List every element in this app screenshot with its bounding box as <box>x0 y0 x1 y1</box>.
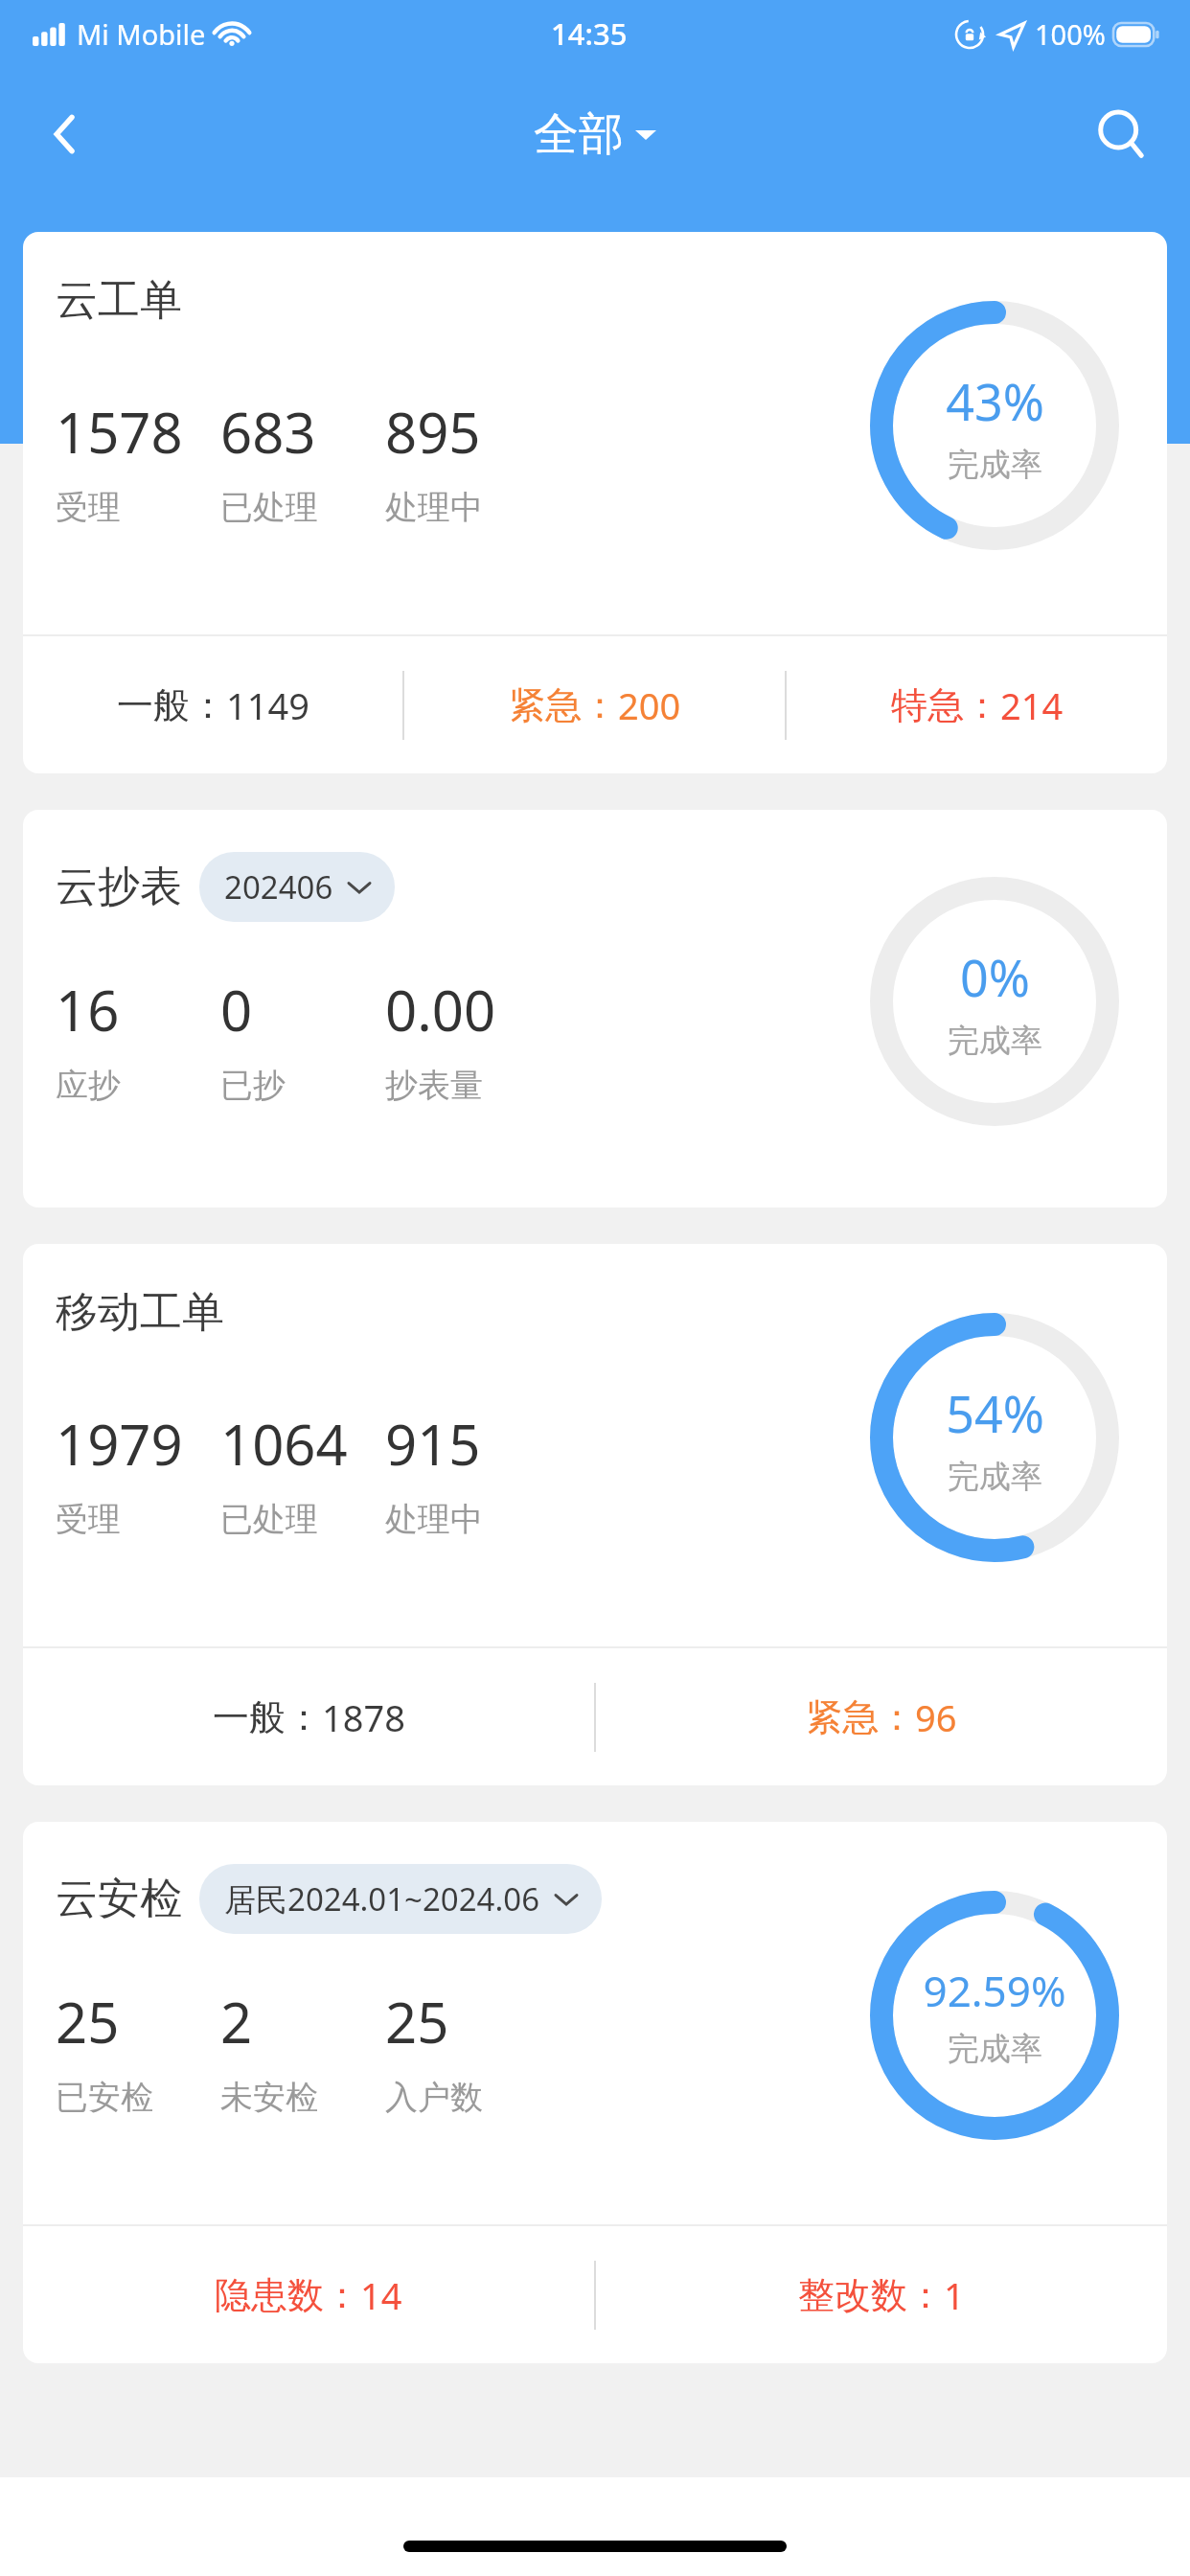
staticText: 1878 <box>322 1692 405 1742</box>
staticText: 683 <box>220 394 316 470</box>
staticText: 43% <box>946 367 1044 435</box>
staticText: 一般： <box>213 1694 322 1740</box>
button[interactable]: 整改数： <box>596 2226 1167 2363</box>
staticText: 移动工单 <box>56 1286 224 1339</box>
staticText: 云抄表 <box>56 861 182 913</box>
staticText: 受理 <box>56 1499 121 1540</box>
staticText: 1149 <box>226 680 309 730</box>
staticText: 受理 <box>56 487 121 528</box>
staticText: 云安检 <box>56 1873 182 1925</box>
staticText: 应抄 <box>56 1065 121 1106</box>
button[interactable]: 一般： <box>23 636 402 773</box>
staticText: 54% <box>946 1379 1044 1447</box>
staticText: 915 <box>385 1406 481 1482</box>
staticText: 完成率 <box>948 445 1042 485</box>
staticText: 紧急： <box>509 682 618 728</box>
button[interactable]: Search <box>1075 88 1167 180</box>
staticText: 整改数： <box>798 2272 944 2318</box>
button[interactable]: 一般： <box>23 1648 594 1785</box>
staticText: 云工单 <box>56 274 182 327</box>
staticText: 1 <box>944 2270 965 2320</box>
button[interactable]: Back <box>19 88 111 180</box>
button[interactable]: 紧急： <box>404 636 785 773</box>
staticText: 214 <box>1000 680 1064 730</box>
staticText: 特急： <box>891 682 1000 728</box>
staticText: 入户数 <box>385 2077 483 2118</box>
staticText: 全部 <box>534 106 624 163</box>
button[interactable]: 云安检 <box>23 1822 1167 2363</box>
staticText: 已安检 <box>56 2077 153 2118</box>
staticText: 0 <box>220 972 253 1047</box>
staticText: 100% <box>1035 15 1106 53</box>
button[interactable]: 云工单 <box>23 232 1167 773</box>
staticText: 2 <box>220 1984 253 2059</box>
staticText: 一般： <box>117 682 226 728</box>
staticText: 1064 <box>220 1406 348 1482</box>
button[interactable]: 云抄表 <box>23 810 1167 1207</box>
staticText: 处理中 <box>385 487 483 528</box>
button[interactable]: 紧急： <box>596 1648 1167 1785</box>
staticText: 完成率 <box>948 1457 1042 1497</box>
staticText: 16 <box>56 972 120 1047</box>
staticText: 14:35 <box>551 13 628 54</box>
staticText: 0% <box>960 943 1030 1011</box>
staticText: 未安检 <box>220 2077 318 2118</box>
staticText: 25 <box>385 1984 449 2059</box>
button[interactable]: 隐患数： <box>23 2226 594 2363</box>
button[interactable]: 移动工单 <box>23 1244 1167 1785</box>
staticText: 14 <box>360 2270 402 2320</box>
staticText: 202406 <box>224 865 333 908</box>
button[interactable]: 202406 <box>199 852 395 922</box>
staticText: 0.00 <box>385 972 496 1047</box>
staticText: 完成率 <box>948 2029 1042 2069</box>
button[interactable]: 居民2024.01~2024.06 <box>199 1864 602 1934</box>
staticText: 完成率 <box>948 1021 1042 1061</box>
staticText: 25 <box>56 1984 120 2059</box>
staticText: 96 <box>915 1692 957 1742</box>
staticText: 居民2024.01~2024.06 <box>224 1877 540 1920</box>
staticText: 895 <box>385 394 481 470</box>
staticText: 1578 <box>56 394 183 470</box>
staticText: 92.59% <box>923 1962 1066 2019</box>
staticText: Mi Mobile <box>77 15 206 53</box>
staticText: 紧急： <box>806 1694 915 1740</box>
staticText: 隐患数： <box>215 2272 360 2318</box>
staticText: 1979 <box>56 1406 183 1482</box>
staticText: 已抄 <box>220 1065 286 1106</box>
staticText: 已处理 <box>220 1499 318 1540</box>
button[interactable]: 全部 <box>534 106 656 163</box>
staticText: 已处理 <box>220 487 318 528</box>
button[interactable]: 特急： <box>787 636 1167 773</box>
staticText: 抄表量 <box>385 1065 483 1106</box>
staticText: 处理中 <box>385 1499 483 1540</box>
staticText: 200 <box>618 680 681 730</box>
